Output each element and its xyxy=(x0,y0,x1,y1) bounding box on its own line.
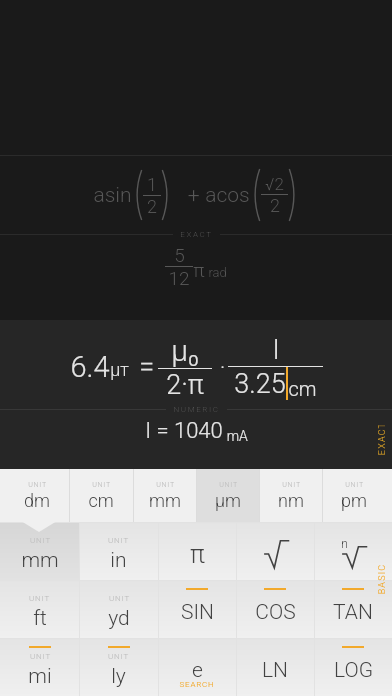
staticText: I = 1040 xyxy=(145,418,223,444)
button[interactable]: UNIT xyxy=(79,638,158,696)
staticText: UNIT xyxy=(108,652,129,661)
staticText: ly xyxy=(111,664,126,689)
staticText: yd xyxy=(108,606,130,631)
button[interactable]: e xyxy=(158,638,236,696)
staticText: mm xyxy=(149,490,181,511)
staticText: mm xyxy=(21,548,59,573)
staticText: COS xyxy=(255,600,296,625)
staticText: SIN xyxy=(181,600,214,625)
button[interactable]: UNIT xyxy=(5,469,69,522)
staticText: 2·π xyxy=(166,369,204,401)
staticText: n xyxy=(341,537,348,551)
staticText: 12 xyxy=(168,267,190,289)
staticText: UNIT xyxy=(109,594,130,603)
staticText: cm xyxy=(88,490,114,511)
staticText: 2 xyxy=(147,196,157,217)
staticText: mi xyxy=(28,664,52,689)
staticText: UNIT xyxy=(30,652,51,661)
button[interactable]: π xyxy=(158,522,236,580)
button[interactable]: Exact result mode xyxy=(367,402,392,478)
button[interactable]: UNIT xyxy=(69,469,133,522)
button[interactable]: UNIT xyxy=(0,638,79,696)
staticText: 6.4 xyxy=(70,350,110,384)
button[interactable]: LOG xyxy=(314,638,392,696)
staticText: = xyxy=(129,351,158,383)
staticText: acos xyxy=(205,183,250,208)
staticText: UNIT xyxy=(156,481,175,489)
staticText: BASIC xyxy=(376,564,387,594)
staticText: UNIT xyxy=(29,594,50,603)
staticText: √2 xyxy=(265,174,284,194)
staticText: nm xyxy=(278,490,304,511)
staticText: π xyxy=(193,259,205,281)
button[interactable]: TAN xyxy=(314,580,392,638)
staticText: e xyxy=(192,658,203,683)
staticText: rad xyxy=(205,265,227,280)
staticText: + xyxy=(172,183,205,208)
staticText: UNIT xyxy=(108,536,129,545)
staticText: UNIT xyxy=(92,481,111,489)
staticText: π xyxy=(190,540,205,569)
staticText: μ₀ xyxy=(171,333,199,368)
staticText: asin xyxy=(93,183,132,208)
staticText: pm xyxy=(341,490,367,511)
staticText: µт xyxy=(110,359,129,380)
staticText: LOG xyxy=(334,658,373,683)
button[interactable]: UNIT xyxy=(79,580,158,638)
staticText: in xyxy=(110,548,127,573)
staticText: · xyxy=(212,355,228,380)
staticText: EXACT xyxy=(376,425,387,455)
staticText: TAN xyxy=(333,600,373,625)
staticText: EXACT xyxy=(180,230,213,239)
staticText: cm xyxy=(288,377,317,400)
button[interactable]: COS xyxy=(236,580,314,638)
staticText: UNIT xyxy=(30,536,51,545)
button[interactable]: UNIT xyxy=(322,469,385,522)
button[interactable]: LN xyxy=(236,638,314,696)
staticText: I xyxy=(272,334,280,366)
staticText: UNIT xyxy=(219,481,238,489)
staticText: 1 xyxy=(147,174,157,195)
button[interactable]: SIN xyxy=(158,580,236,638)
staticText: UNIT xyxy=(282,481,301,489)
staticText: UNIT xyxy=(345,481,364,489)
staticText: 2 xyxy=(270,195,280,216)
button[interactable]: Basic keypad xyxy=(367,541,392,617)
button[interactable]: UNIT xyxy=(196,469,259,522)
staticText: ft xyxy=(33,606,47,631)
staticText: NUMERIC xyxy=(173,405,220,414)
staticText: mA xyxy=(223,428,248,444)
staticText: LN xyxy=(262,658,288,683)
button[interactable]: UNIT xyxy=(259,469,322,522)
staticText: dm xyxy=(24,490,50,511)
button[interactable]: UNIT xyxy=(0,522,79,580)
staticText: 5 xyxy=(174,244,185,266)
button[interactable]: n xyxy=(314,522,392,580)
staticText: 3.25 xyxy=(234,368,286,400)
button[interactable]: UNIT xyxy=(0,580,79,638)
staticText: UNIT xyxy=(28,481,47,489)
staticText: SEARCH xyxy=(179,680,215,689)
button[interactable] xyxy=(236,522,314,580)
staticText: µm xyxy=(215,490,241,511)
button[interactable]: UNIT xyxy=(79,522,158,580)
button[interactable]: UNIT xyxy=(133,469,196,522)
